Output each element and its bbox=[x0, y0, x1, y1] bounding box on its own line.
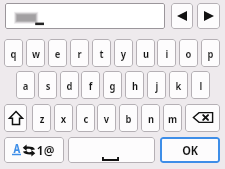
button[interactable]: w bbox=[26, 39, 45, 67]
button[interactable]: Text input field bbox=[5, 3, 165, 29]
staticText: k bbox=[175, 78, 181, 93]
staticText: g bbox=[109, 78, 115, 93]
button[interactable]: Move cursor left bbox=[171, 3, 193, 29]
button[interactable]: Backspace bbox=[185, 104, 220, 132]
button[interactable]: k bbox=[169, 71, 188, 99]
staticText: OK bbox=[182, 142, 199, 159]
button[interactable]: z bbox=[32, 104, 51, 132]
button[interactable]: Shift bbox=[4, 104, 27, 132]
staticText: j bbox=[155, 78, 159, 93]
button[interactable]: v bbox=[97, 104, 116, 132]
staticText: s bbox=[45, 78, 51, 93]
staticText: p bbox=[207, 46, 213, 61]
button[interactable]: l bbox=[191, 71, 210, 99]
button[interactable]: e bbox=[48, 39, 67, 67]
button[interactable]: Move cursor right bbox=[197, 3, 220, 29]
button[interactable]: u bbox=[136, 39, 155, 67]
staticText: 1@ bbox=[37, 141, 55, 159]
button[interactable]: g bbox=[103, 71, 122, 99]
button[interactable]: r bbox=[70, 39, 89, 67]
staticText: q bbox=[10, 46, 16, 61]
button[interactable]: a bbox=[16, 71, 35, 99]
staticText: l bbox=[199, 78, 203, 93]
staticText: c bbox=[83, 111, 88, 126]
staticText: i bbox=[165, 46, 169, 61]
button[interactable]: f bbox=[81, 71, 100, 99]
button[interactable]: p bbox=[201, 39, 220, 67]
button[interactable]: i bbox=[157, 39, 176, 67]
button[interactable]: s bbox=[38, 71, 57, 99]
staticText: u bbox=[143, 46, 149, 61]
staticText: e bbox=[54, 46, 60, 61]
button[interactable]: x bbox=[54, 104, 73, 132]
staticText: w bbox=[32, 46, 40, 61]
button[interactable]: n bbox=[141, 104, 160, 132]
staticText: v bbox=[103, 111, 109, 126]
button[interactable]: b bbox=[119, 104, 138, 132]
staticText: x bbox=[60, 111, 66, 126]
staticText: b bbox=[125, 111, 131, 126]
button[interactable]: d bbox=[60, 71, 79, 99]
button[interactable]: y bbox=[114, 39, 133, 67]
button[interactable]: o bbox=[179, 39, 198, 67]
button[interactable]: Switch input mode bbox=[4, 137, 64, 163]
staticText: n bbox=[148, 111, 154, 126]
staticText: y bbox=[120, 46, 126, 61]
staticText: a bbox=[22, 78, 28, 93]
staticText: o bbox=[185, 46, 191, 61]
button[interactable]: m bbox=[163, 104, 182, 132]
staticText: f bbox=[88, 78, 93, 93]
staticText: r bbox=[77, 46, 82, 61]
button[interactable]: h bbox=[125, 71, 144, 99]
button[interactable]: OK bbox=[160, 137, 220, 163]
button[interactable]: q bbox=[4, 39, 23, 67]
button[interactable]: t bbox=[92, 39, 111, 67]
staticText: t bbox=[99, 46, 104, 61]
staticText: d bbox=[66, 78, 72, 93]
staticText: A bbox=[14, 141, 20, 157]
staticText: m bbox=[168, 111, 177, 126]
staticText: z bbox=[39, 111, 45, 126]
staticText: h bbox=[132, 78, 138, 93]
button[interactable]: j bbox=[147, 71, 166, 99]
button[interactable]: c bbox=[76, 104, 95, 132]
button[interactable]: Space bbox=[68, 137, 155, 163]
